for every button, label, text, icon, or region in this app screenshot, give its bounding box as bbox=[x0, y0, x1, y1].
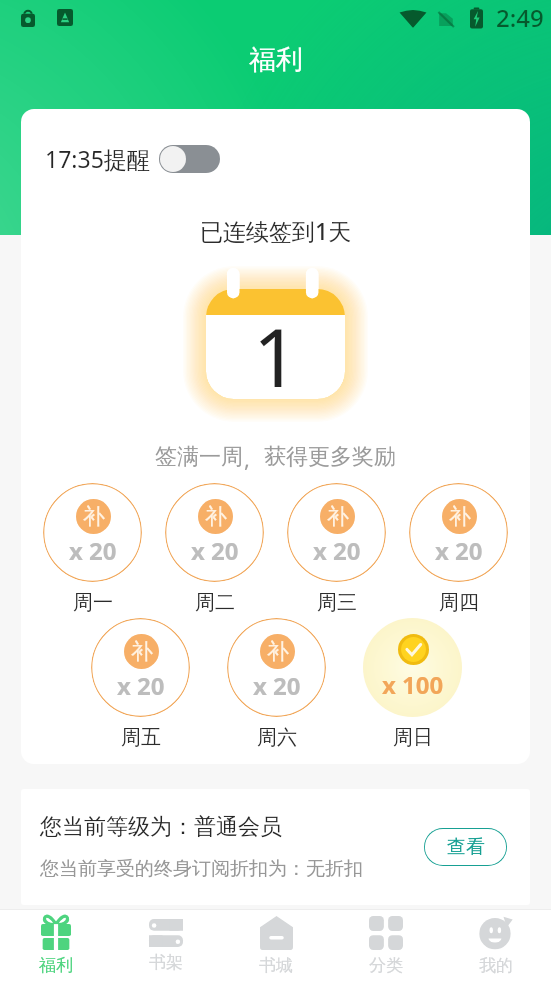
staticText: 周六 bbox=[257, 725, 297, 750]
staticText: x 100 bbox=[382, 668, 444, 701]
staticText: 周二 bbox=[195, 590, 235, 615]
staticText: 周三 bbox=[317, 590, 357, 615]
button[interactable]: 补 bbox=[91, 618, 190, 717]
button[interactable]: 书城 bbox=[221, 916, 331, 976]
staticText: 补 bbox=[205, 503, 227, 531]
button[interactable]: 补 bbox=[409, 483, 508, 582]
staticText: 书城 bbox=[259, 955, 293, 976]
staticText: x 20 bbox=[313, 534, 361, 567]
staticText: 补 bbox=[83, 503, 105, 531]
staticText: 17:35提醒 bbox=[45, 143, 150, 174]
staticText: 周四 bbox=[439, 590, 479, 615]
staticText: 福利 bbox=[249, 43, 303, 77]
staticText: 补 bbox=[267, 638, 289, 666]
staticText: 已连续签到1天 bbox=[200, 215, 352, 246]
button[interactable]: Reminder toggle bbox=[159, 145, 220, 173]
button[interactable]: 我的 bbox=[441, 916, 551, 976]
staticText: 补 bbox=[131, 638, 153, 666]
staticText: , bbox=[244, 443, 250, 473]
staticText: 您当前等级为：普通会员 bbox=[40, 813, 282, 841]
staticText: 您当前享受的终身订阅折扣为：无折扣 bbox=[40, 857, 363, 881]
button[interactable]: 补 bbox=[287, 483, 386, 582]
staticText: 分类 bbox=[369, 955, 403, 976]
button[interactable]: 福利 bbox=[0, 915, 111, 976]
staticText: 签满一周 bbox=[155, 443, 243, 471]
staticText: 周日 bbox=[393, 725, 433, 750]
button[interactable]: 分类 bbox=[331, 916, 441, 976]
staticText: 补 bbox=[327, 503, 349, 531]
staticText: 周五 bbox=[121, 725, 161, 750]
button[interactable]: 补 bbox=[165, 483, 264, 582]
staticText: 福利 bbox=[39, 955, 73, 976]
button[interactable]: 补 bbox=[43, 483, 142, 582]
staticText: x 20 bbox=[117, 669, 165, 702]
staticText: x 20 bbox=[191, 534, 239, 567]
button[interactable]: 补 bbox=[227, 618, 326, 717]
button[interactable]: 查看 bbox=[424, 828, 507, 866]
staticText: x 20 bbox=[435, 534, 483, 567]
button[interactable]: 书架 bbox=[111, 919, 221, 973]
staticText: x 20 bbox=[69, 534, 117, 567]
staticText: 查看 bbox=[447, 835, 485, 859]
staticText: 2:49 bbox=[496, 1, 544, 34]
staticText: 我的 bbox=[479, 955, 513, 976]
staticText: 周一 bbox=[73, 590, 113, 615]
button[interactable]: x 100 bbox=[363, 618, 462, 717]
staticText: 获得更多奖励 bbox=[264, 443, 396, 471]
staticText: 书架 bbox=[149, 952, 183, 973]
staticText: 补 bbox=[449, 503, 471, 531]
staticText: 1 bbox=[253, 301, 299, 410]
staticText: x 20 bbox=[253, 669, 301, 702]
